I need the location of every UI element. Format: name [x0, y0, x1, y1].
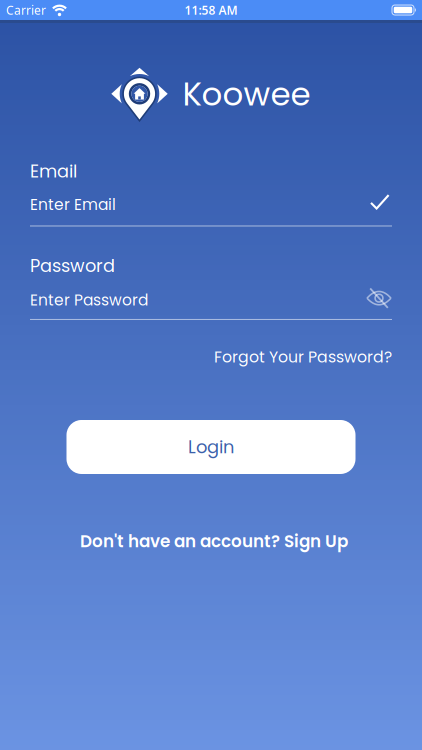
staticText: Password [30, 253, 115, 278]
button[interactable]: Don't have an account? Sign Up [77, 529, 345, 553]
staticText: 11:58 AM [184, 2, 237, 18]
staticText: Login [188, 434, 234, 459]
staticText: Forgot Your Password? [214, 346, 392, 368]
button[interactable]: Login [66, 420, 355, 474]
staticText: Enter Password [30, 289, 148, 311]
button[interactable] [366, 290, 392, 311]
button[interactable]: Forgot Your Password? [214, 346, 392, 368]
button[interactable]: Enter Password [30, 289, 358, 311]
button[interactable]: Enter Email [30, 194, 392, 215]
staticText: Carrier [6, 2, 46, 18]
staticText: Koowee [182, 71, 310, 117]
staticText: Enter Email [30, 194, 116, 215]
staticText: Email [30, 159, 77, 184]
staticText: Don't have an account? Sign Up [80, 529, 348, 553]
